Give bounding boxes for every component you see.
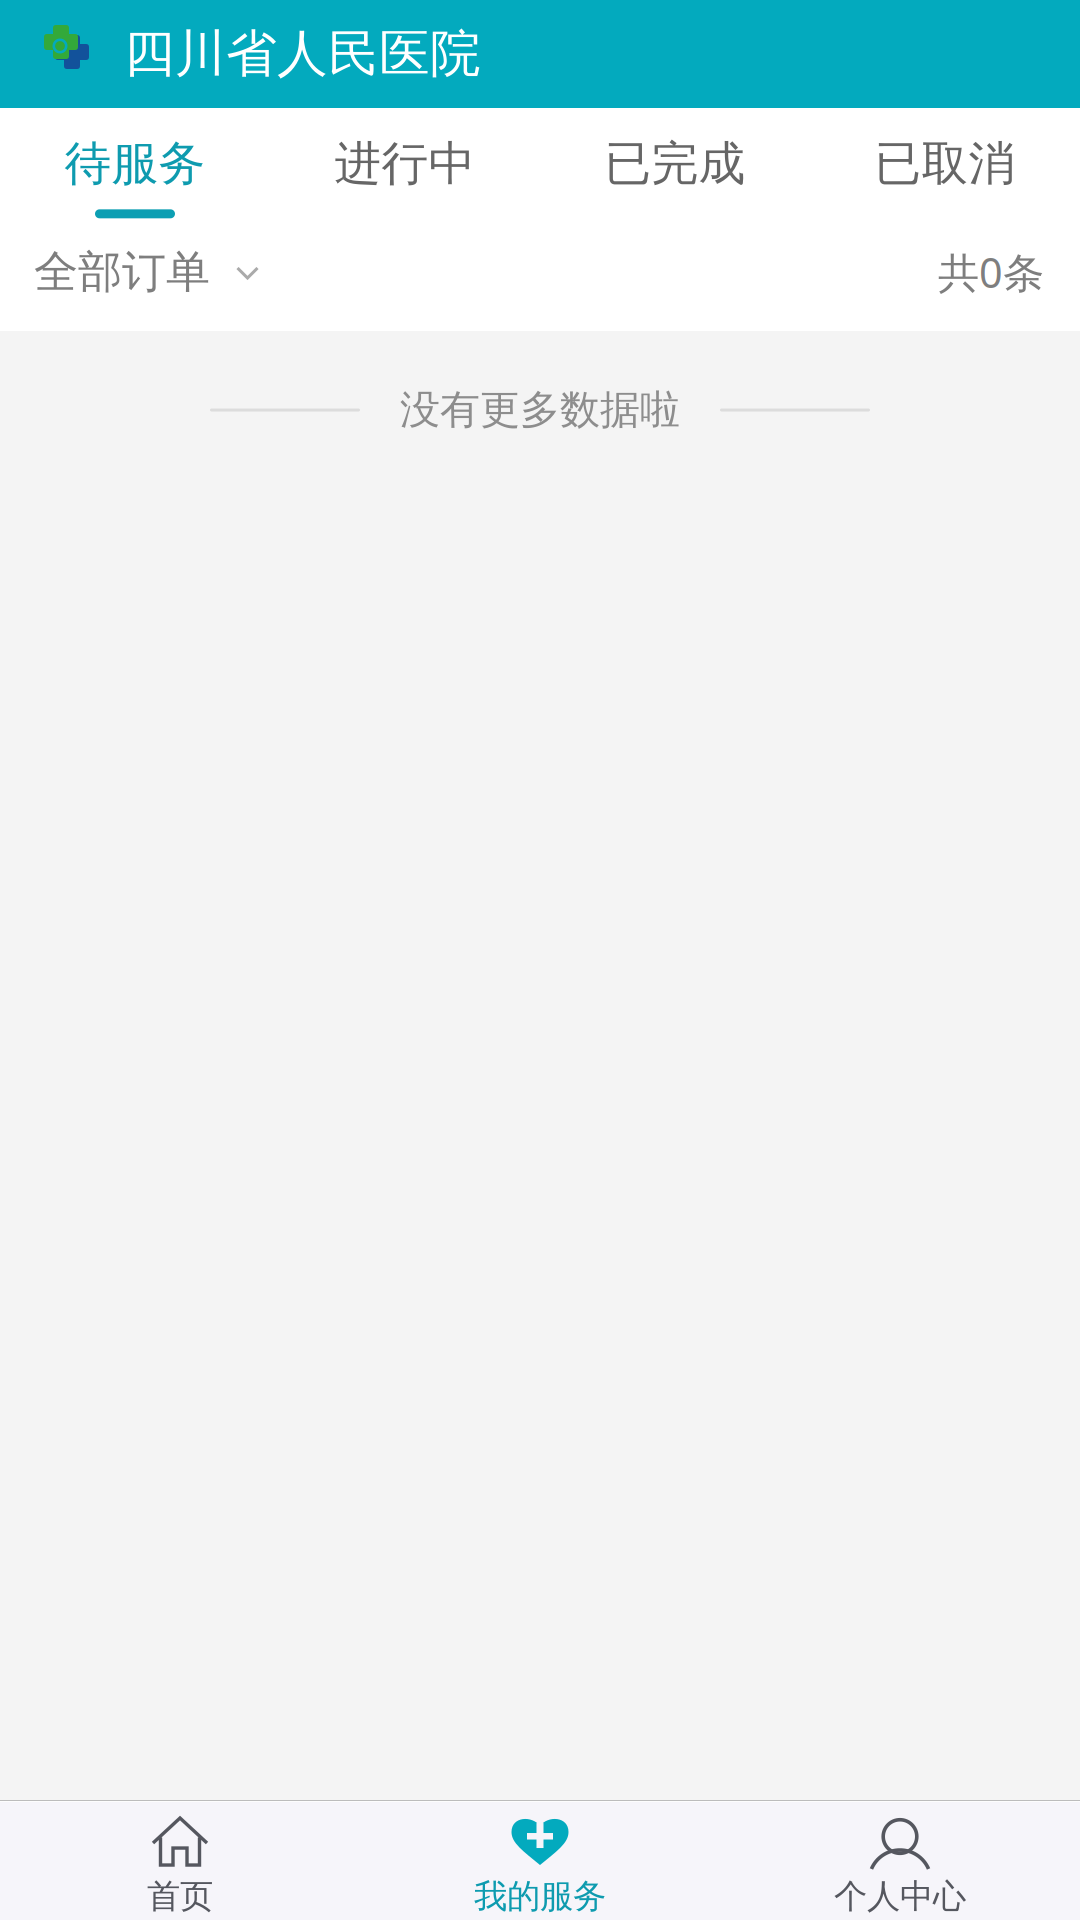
button[interactable]: 个人中心 [720,1801,1080,1920]
button[interactable]: 全部订单 [34,233,269,311]
staticText: 进行中 [334,135,475,192]
staticText: 待服务 [64,135,205,192]
button[interactable]: 已取消 [810,108,1080,233]
staticText: 已取消 [874,135,1015,192]
button[interactable]: 我的服务 [360,1801,720,1920]
staticText: 已完成 [604,135,745,192]
staticText: 个人中心 [834,1876,966,1917]
button[interactable]: 已完成 [540,108,810,233]
staticText: 全部订单 [34,245,210,299]
button[interactable]: 待服务 [0,108,270,233]
button[interactable]: 进行中 [270,108,540,233]
staticText: 首页 [147,1876,213,1917]
staticText: 共0条 [938,245,1044,299]
staticText: 四川省人民医院 [124,23,481,85]
button[interactable]: 首页 [0,1801,360,1920]
staticText: 我的服务 [474,1876,606,1917]
staticText: 没有更多数据啦 [400,385,680,434]
